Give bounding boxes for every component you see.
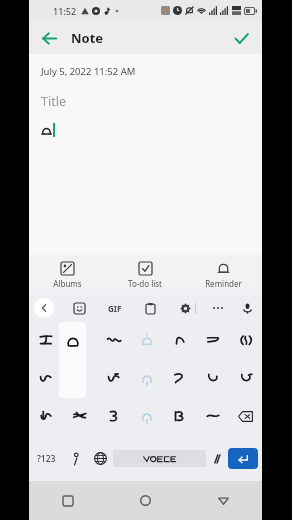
staticText: Reminder — [205, 278, 242, 289]
button[interactable]: Collapse toolbar — [34, 298, 54, 318]
button[interactable]: Back — [38, 27, 60, 49]
button[interactable]: Stickers — [69, 298, 89, 318]
button[interactable]: Punctuation — [63, 436, 88, 481]
button[interactable]: Key 13 — [229, 359, 262, 396]
button[interactable]: Key 4 — [163, 321, 196, 359]
button[interactable]: Back — [184, 481, 262, 520]
button[interactable]: Key 8 — [63, 359, 97, 396]
button[interactable]: Space — [113, 450, 206, 467]
staticText: To-do list — [128, 278, 162, 289]
button[interactable]: Key 9 — [97, 359, 130, 396]
button[interactable]: Key 7 — [29, 359, 63, 396]
button[interactable]: Key 5 — [196, 321, 229, 359]
button[interactable]: Reminder — [184, 255, 262, 295]
button[interactable]: Key 16 — [97, 396, 130, 436]
button[interactable]: Slash — [206, 436, 227, 481]
button[interactable]: To-do list — [106, 255, 184, 295]
button[interactable]: Key 3 — [130, 321, 163, 359]
staticText: Albums — [53, 278, 82, 289]
button[interactable]: Recent apps — [29, 481, 106, 520]
button[interactable]: Key 6 — [229, 321, 262, 359]
button[interactable]: Key 12 — [196, 359, 229, 396]
button[interactable]: Key 1 — [63, 321, 97, 359]
button[interactable]: Voice input — [238, 298, 257, 318]
staticText: July 5, 2022 11:52 AM — [41, 65, 136, 78]
staticText: Note — [71, 29, 104, 47]
button[interactable]: Key 17 — [130, 396, 163, 436]
staticText: 11:52 — [53, 5, 77, 17]
staticText: ?123 — [37, 453, 56, 465]
button[interactable]: Backspace — [229, 396, 262, 436]
button[interactable]: Save note — [229, 26, 253, 50]
button[interactable]: GIF — [104, 297, 126, 319]
button[interactable]: Key 18 — [163, 396, 196, 436]
button[interactable]: ?123 — [29, 436, 63, 481]
button[interactable]: July 5, 2022 11:52 AM — [29, 54, 262, 255]
button[interactable]: Key 11 — [163, 359, 196, 396]
button[interactable]: More options — [208, 298, 228, 318]
button[interactable]: Key 2 — [97, 321, 130, 359]
button[interactable]: Key 0 — [29, 321, 63, 359]
button[interactable]: Key 19 — [196, 396, 229, 436]
staticText: Title — [41, 93, 66, 110]
button[interactable]: Clipboard — [140, 298, 160, 318]
button[interactable]: Home — [106, 481, 184, 520]
button[interactable]: Key 10 — [130, 359, 163, 396]
button[interactable]: Key 15 — [63, 396, 97, 436]
button[interactable]: Albums — [29, 255, 106, 295]
button[interactable]: Enter — [228, 448, 258, 469]
button[interactable]: Change language — [88, 436, 113, 481]
staticText: GIF — [108, 303, 122, 314]
button[interactable]: Settings — [175, 298, 195, 318]
button[interactable]: Key 14 — [29, 396, 63, 436]
